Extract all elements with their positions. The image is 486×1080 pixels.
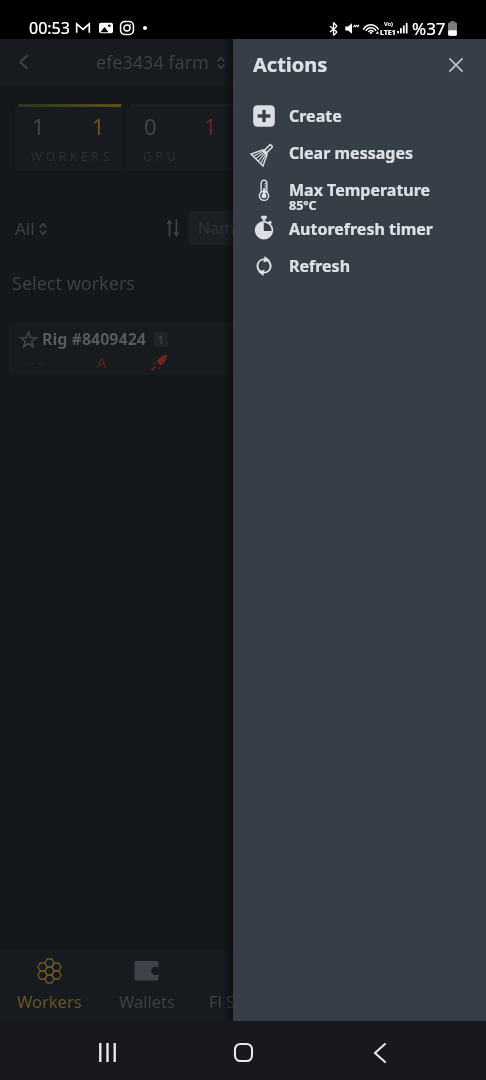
staticText: 0 [144,111,157,141]
staticText: Name [198,217,244,239]
staticText: efe3434 farm [96,50,209,75]
button[interactable]: Sort [158,213,188,243]
staticText: POOL [367,148,415,164]
staticText: 85°C [289,197,317,214]
button[interactable]: Workers [0,949,98,1021]
staticText: A [97,352,107,372]
button[interactable]: Fl Sheets [195,949,292,1021]
button[interactable]: Back [8,46,40,78]
staticText: LTE1 [380,28,396,38]
button[interactable]: Clear messages [233,134,486,172]
button[interactable]: Max Temperature [233,171,486,209]
staticText: 00:53 [29,17,70,39]
staticText: Rig #8409424 [42,328,146,350]
staticText: 0 [316,111,329,141]
staticText: 0 [256,111,269,141]
staticText: WORKERS [31,148,113,164]
button[interactable]: Create [233,97,486,135]
button[interactable]: Refresh [233,247,486,285]
button[interactable]: Actions [253,50,328,79]
staticText: 1 [32,111,45,141]
staticText: Vo) [384,20,393,28]
button[interactable]: Wallets [98,949,195,1021]
staticText: GPU [143,148,179,164]
staticText: 1 [204,111,217,141]
button[interactable]: Autorefresh timer [233,210,486,248]
button[interactable]: Rig #8409424 [9,323,477,375]
staticText: Fl Sheets [209,990,278,1012]
button[interactable]: Home [215,1024,272,1080]
staticText: 1 [158,333,164,347]
staticText: Create [289,105,342,127]
button[interactable]: All [15,217,47,240]
button[interactable]: Recent apps [79,1024,136,1080]
staticText: Select workers [12,271,135,296]
staticText: All [15,217,35,240]
staticText: Wallets [119,990,175,1012]
staticText: Actions [253,51,328,78]
staticText: 1 [92,111,105,141]
staticText: ASIC [255,148,296,164]
staticText: Workers [17,990,82,1012]
button[interactable]: Name [188,211,368,245]
staticText: Autorefresh timer [289,218,434,240]
staticText: %37 [412,17,446,40]
staticText: Clear messages [289,142,413,164]
button[interactable]: Close [439,48,473,82]
button[interactable]: Back [351,1024,408,1080]
staticText: Refresh [289,255,351,277]
staticText: Max Temperature [289,179,431,201]
